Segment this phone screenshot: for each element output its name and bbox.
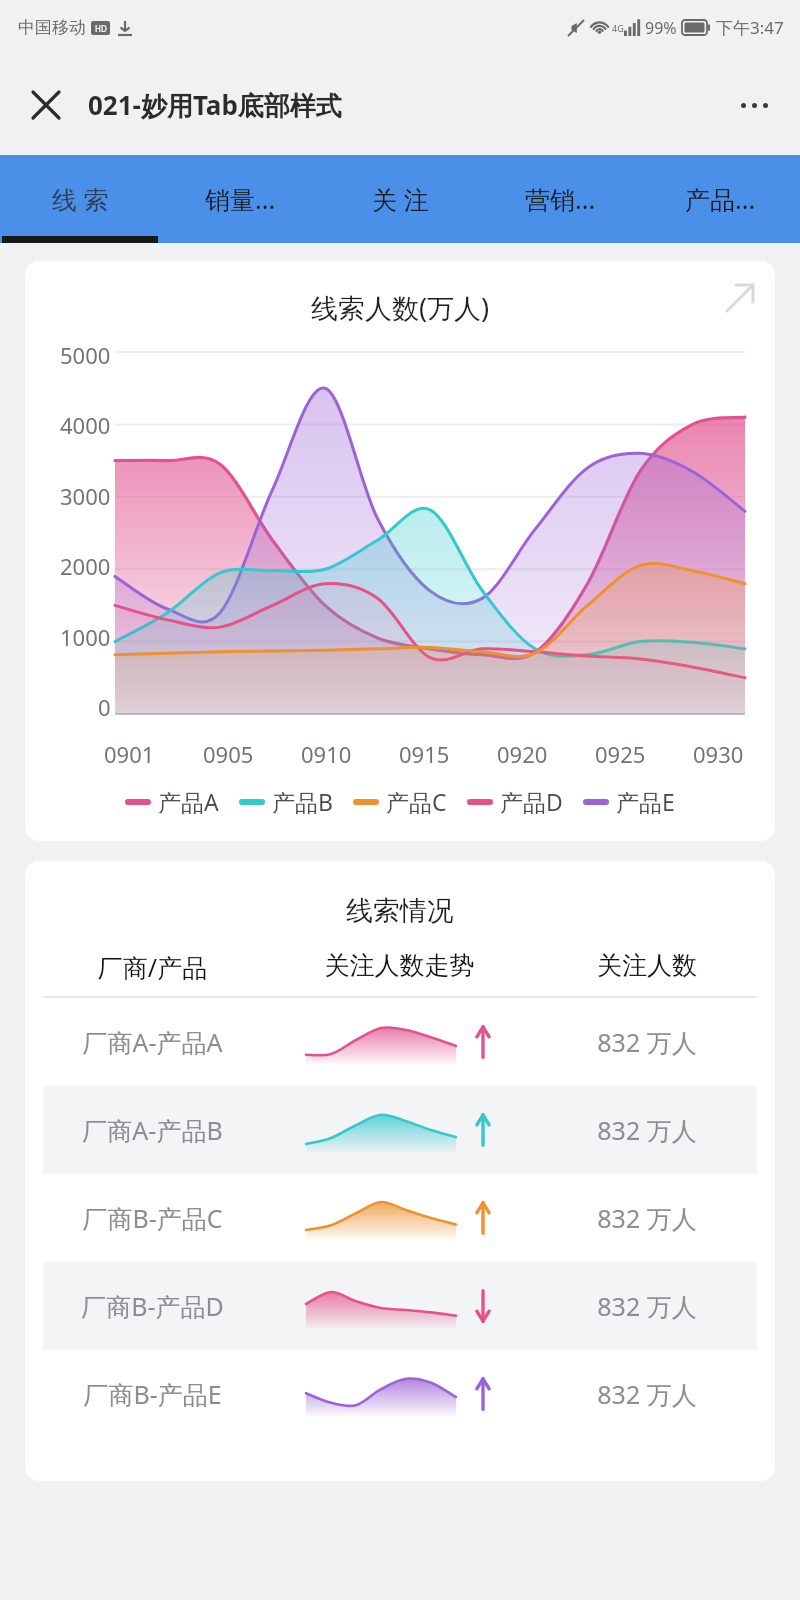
staticText: 0910 (301, 739, 352, 769)
button[interactable]: 厂商A-产品A (43, 998, 757, 1086)
staticText: 0920 (497, 739, 548, 769)
staticText: 厂商A-产品B (43, 1113, 262, 1147)
staticText: 5000 (60, 340, 111, 370)
staticText: 产品B (272, 786, 333, 817)
button[interactable]: 厂商A-产品B (43, 1086, 757, 1174)
staticText: 832 万人 (537, 1025, 757, 1059)
staticText: 4000 (60, 410, 111, 440)
staticText: 2000 (60, 551, 111, 581)
button[interactable]: 营销... (480, 155, 640, 243)
staticText: 厂商B-产品D (43, 1289, 262, 1323)
staticText: 关 注 (372, 182, 429, 216)
button[interactable]: More options (730, 81, 778, 129)
button[interactable]: 厂商B-产品E (43, 1350, 757, 1438)
button[interactable]: 销量... (160, 155, 320, 243)
staticText: 3000 (60, 481, 111, 511)
staticText: 0905 (203, 739, 254, 769)
staticText: 厂商/产品 (43, 950, 262, 984)
staticText: 0901 (104, 739, 155, 769)
button[interactable]: Expand chart (717, 275, 763, 321)
staticText: 1000 (60, 622, 111, 652)
button[interactable]: Close (22, 81, 70, 129)
staticText: 832 万人 (537, 1377, 757, 1411)
staticText: 832 万人 (537, 1113, 757, 1147)
staticText: 关注人数走势 (262, 950, 537, 981)
staticText: 832 万人 (537, 1201, 757, 1235)
staticText: 线索人数(万人) (311, 289, 490, 326)
staticText: 线 索 (52, 182, 109, 216)
staticText: 厂商B-产品E (43, 1377, 262, 1411)
button[interactable]: 线索人数(万人) (25, 261, 775, 841)
staticText: 832 万人 (537, 1289, 757, 1323)
staticText: 0930 (693, 739, 744, 769)
button[interactable]: 厂商B-产品C (43, 1174, 757, 1262)
staticText: 4G (612, 22, 624, 34)
staticText: 营销... (525, 182, 596, 216)
staticText: 产品C (386, 786, 447, 817)
staticText: 产品E (616, 786, 675, 817)
staticText: 0925 (595, 739, 646, 769)
button[interactable]: 厂商B-产品D (43, 1262, 757, 1350)
staticText: 0 (98, 692, 111, 722)
staticText: 厂商A-产品A (43, 1025, 262, 1059)
button[interactable]: 关 注 (320, 155, 480, 243)
staticText: 厂商B-产品C (43, 1201, 262, 1235)
staticText: 产品A (158, 786, 219, 817)
staticText: 产品D (500, 786, 563, 817)
staticText: 关注人数 (537, 950, 757, 981)
staticText: 销量... (205, 182, 276, 216)
staticText: 下午3:47 (716, 16, 784, 39)
staticText: 中国移动 (18, 17, 86, 38)
staticText: 产品... (685, 182, 756, 216)
staticText: 021-妙用Tab底部样式 (88, 87, 342, 123)
button[interactable]: 线索情况 (25, 861, 775, 1481)
button[interactable]: 线 索 (0, 155, 160, 243)
button[interactable]: 产品... (640, 155, 800, 243)
staticText: 0915 (399, 739, 450, 769)
staticText: 线索情况 (25, 894, 775, 928)
staticText: HD (95, 23, 107, 34)
staticText: 99% (645, 17, 677, 39)
